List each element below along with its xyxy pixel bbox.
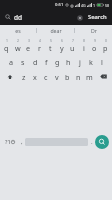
button[interactable]: d — [29, 54, 41, 69]
staticText: i — [83, 43, 85, 53]
staticText: s — [21, 57, 25, 67]
staticText: p — [103, 43, 108, 53]
button[interactable]: a — [5, 54, 17, 69]
staticText: 1 — [93, 3, 96, 8]
button[interactable]: n — [73, 69, 84, 84]
staticText: z — [22, 72, 26, 82]
staticText: Dr — [91, 27, 97, 34]
button[interactable]: 1 — [1, 37, 12, 54]
button[interactable]: h — [63, 54, 74, 69]
button[interactable]: 5 — [45, 37, 56, 54]
staticText: k — [89, 57, 93, 67]
staticText: v — [55, 72, 59, 82]
staticText: q — [4, 43, 9, 53]
staticText: c — [44, 72, 48, 82]
button[interactable]: dear — [37, 25, 74, 36]
button[interactable]: z — [18, 69, 29, 84]
staticText: 6 — [61, 38, 63, 43]
button[interactable]: Search — [95, 135, 109, 149]
staticText: l — [101, 57, 103, 67]
button[interactable]: es — [0, 25, 36, 36]
staticText: dear — [50, 27, 62, 34]
button[interactable]: Dr — [75, 25, 112, 36]
button[interactable]: m — [84, 69, 95, 84]
staticText: dd — [14, 13, 23, 22]
button[interactable]: 2 — [12, 37, 23, 54]
staticText: . — [91, 138, 93, 146]
button[interactable]: v — [51, 69, 62, 84]
staticText: u — [70, 43, 75, 53]
button[interactable]: Shift — [1, 69, 18, 84]
staticText: , — [21, 138, 23, 146]
staticText: 0 — [105, 38, 107, 43]
staticText: 58 — [105, 3, 110, 8]
button[interactable]: 9 — [89, 37, 100, 54]
staticText: g — [55, 57, 60, 67]
button[interactable]: 3 — [23, 37, 34, 54]
button[interactable]: Clear query — [76, 14, 83, 21]
staticText: 4 — [39, 38, 41, 43]
staticText: 2 — [17, 38, 19, 43]
button[interactable]: g — [52, 54, 63, 69]
staticText: h — [66, 57, 71, 67]
staticText: 5 — [50, 38, 52, 43]
button[interactable]: f — [41, 54, 52, 69]
staticText: f — [45, 57, 48, 67]
button[interactable]: 7 — [67, 37, 78, 54]
button[interactable]: ?1 — [2, 84, 18, 200]
staticText: y — [60, 43, 64, 53]
staticText: 0:51 — [55, 2, 64, 8]
staticText: 7 — [72, 38, 74, 43]
staticText: x — [33, 72, 37, 82]
staticText: 1 — [6, 38, 8, 43]
button[interactable]: s — [17, 54, 29, 69]
staticText: 3 — [28, 38, 30, 43]
staticText: d — [33, 57, 38, 67]
staticText: Search — [88, 13, 107, 21]
button[interactable]: Backspace — [95, 69, 111, 84]
staticText: n — [76, 72, 81, 82]
staticText: ?1 — [5, 138, 11, 146]
staticText: t — [49, 43, 52, 53]
button[interactable]: j — [74, 54, 85, 69]
button[interactable]: 0 — [100, 37, 111, 54]
staticText: j — [79, 57, 81, 67]
button[interactable]: c — [40, 69, 51, 84]
staticText: e — [26, 43, 31, 53]
staticText: 4G — [81, 3, 86, 8]
button[interactable]: 6 — [56, 37, 67, 54]
staticText: a — [9, 57, 14, 67]
staticText: 9 — [94, 38, 96, 43]
staticText: es — [15, 27, 21, 34]
staticText: m — [86, 72, 93, 82]
button[interactable]: b — [62, 69, 73, 84]
button[interactable]: 8 — [78, 37, 89, 54]
staticText: o — [92, 43, 97, 53]
other: Search — [5, 14, 11, 20]
button[interactable]: l — [96, 54, 107, 69]
staticText: r — [38, 43, 41, 53]
staticText: b — [65, 72, 70, 82]
staticText: 8 — [83, 38, 85, 43]
button[interactable]: 4 — [34, 37, 45, 54]
staticText: w — [15, 43, 21, 53]
button[interactable]: Search — [87, 11, 108, 23]
button[interactable]: x — [29, 69, 40, 84]
button[interactable]: k — [85, 54, 96, 69]
